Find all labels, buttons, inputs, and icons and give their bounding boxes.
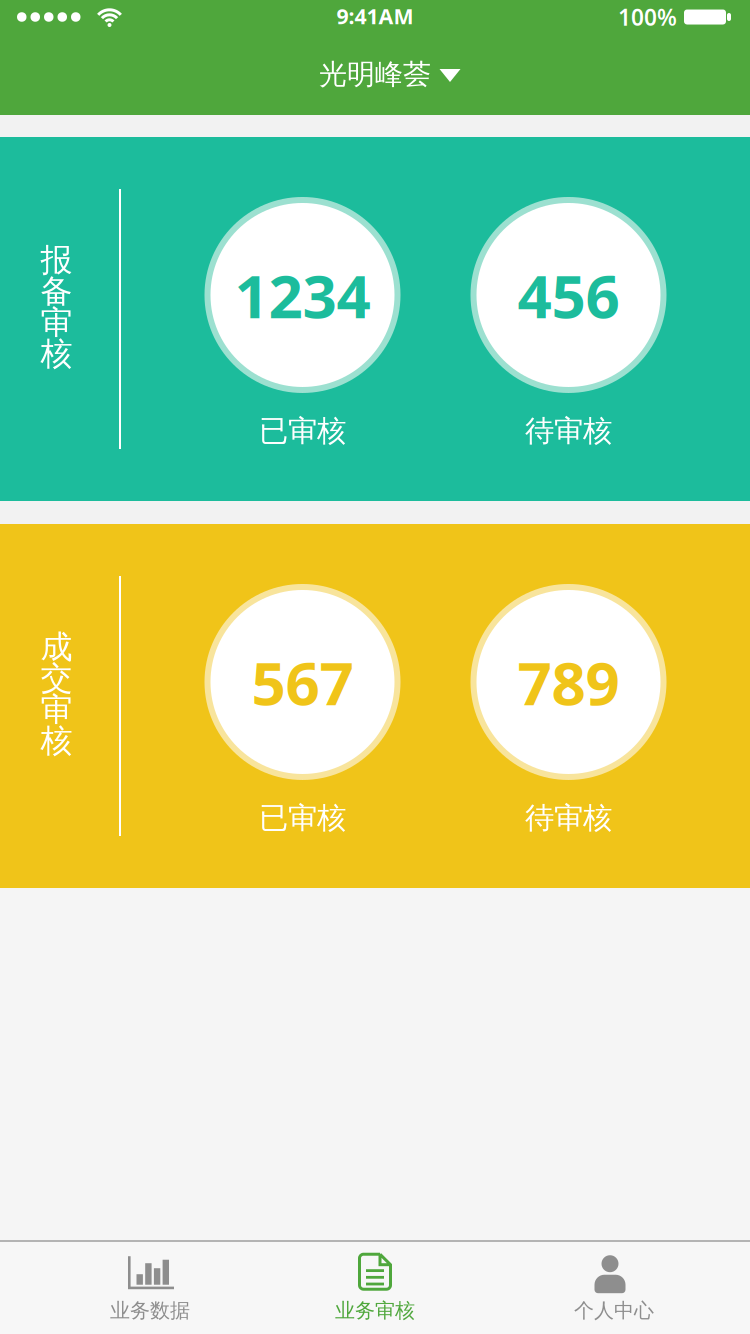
staticText: 审 — [40, 303, 72, 342]
staticText: 交 — [40, 659, 72, 698]
staticText: 备 — [40, 272, 72, 311]
staticText: 567 — [251, 642, 353, 722]
staticText: 已审核 — [259, 413, 346, 449]
staticText: 待审核 — [525, 413, 612, 449]
staticText: 核 — [40, 334, 72, 374]
staticText: 已审核 — [259, 800, 346, 836]
button[interactable]: 个人中心 — [450, 1253, 750, 1323]
staticText: 业务数据 — [110, 1298, 190, 1323]
staticText: 待审核 — [525, 800, 612, 836]
staticText: 456 — [517, 255, 619, 335]
button[interactable]: 光明峰荟 — [245, 37, 505, 112]
staticText: 业务审核 — [335, 1298, 415, 1323]
staticText: 9:41AM — [336, 2, 413, 30]
button[interactable]: 业务数据 — [0, 1253, 300, 1323]
staticText: 1234 — [234, 255, 370, 335]
staticText: 100% — [618, 2, 677, 32]
staticText: 审 — [40, 690, 72, 729]
staticText: 个人中心 — [574, 1298, 654, 1323]
button[interactable]: 业务审核 — [300, 1253, 450, 1323]
staticText: 789 — [517, 642, 619, 722]
staticText: 核 — [40, 721, 72, 761]
staticText: 光明峰荟 — [319, 57, 431, 92]
staticText: 成 — [40, 627, 72, 667]
staticText: 报 — [40, 240, 72, 280]
